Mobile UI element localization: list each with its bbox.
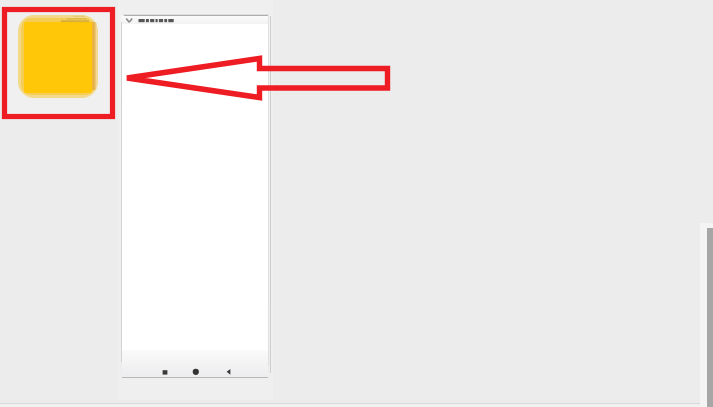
button[interactable]: App icon: [18, 15, 98, 98]
button[interactable]: Back: [225, 368, 233, 376]
button[interactable]: Recent apps: [162, 369, 169, 376]
button[interactable]: Home: [192, 368, 200, 376]
